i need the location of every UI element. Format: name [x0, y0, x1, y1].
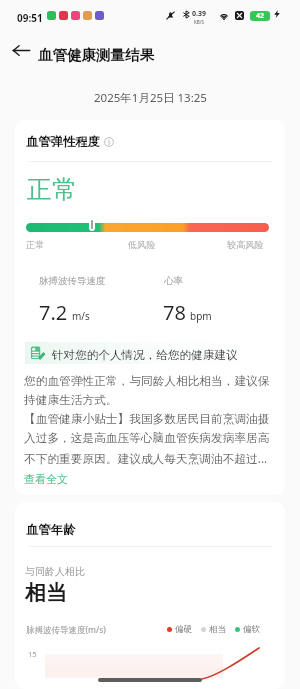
- staticText: 正常: [26, 239, 45, 251]
- staticText: 相当: [209, 624, 226, 635]
- staticText: m/s: [72, 309, 90, 323]
- staticText: 相当: [25, 580, 67, 606]
- staticText: 针对您的个人情况，给您的健康建议: [52, 348, 238, 363]
- staticText: 78: [163, 299, 186, 326]
- button[interactable]: Back: [9, 38, 33, 62]
- staticText: 与同龄人相比: [25, 565, 85, 578]
- staticText: KB/S: [194, 19, 204, 25]
- staticText: 偏软: [243, 624, 260, 635]
- staticText: 入过多，这是高血压等心脑血管疾病发病率居高: [24, 431, 270, 446]
- staticText: 2025年1月25日 13:25: [94, 90, 207, 106]
- staticText: 不下的重要原因。建议成人每天烹调油不超过...: [24, 450, 268, 466]
- staticText: 脉搏波传导速度(m/s): [26, 624, 106, 636]
- staticText: 7.2: [39, 299, 68, 326]
- staticText: 心率: [164, 275, 183, 287]
- staticText: 【血管健康小贴士】我国多数居民目前烹调油摄: [24, 412, 270, 427]
- staticText: 15: [28, 649, 37, 659]
- staticText: 血管年龄: [26, 522, 76, 537]
- staticText: 您的血管弹性正常，与同龄人相比相当，建议保: [24, 374, 270, 389]
- staticText: 09:51: [17, 11, 43, 25]
- button[interactable]: 查看全文: [24, 472, 68, 486]
- staticText: 低风险: [128, 239, 156, 251]
- staticText: 较高风险: [227, 239, 264, 251]
- staticText: 0.39: [192, 9, 206, 19]
- staticText: 脉搏波传导速度: [39, 275, 106, 287]
- staticText: 持健康生活方式。: [24, 393, 118, 408]
- staticText: 42: [256, 11, 265, 21]
- staticText: 血管弹性程度: [26, 134, 100, 149]
- staticText: bpm: [190, 309, 212, 323]
- staticText: 偏硬: [175, 624, 192, 635]
- staticText: 血管健康测量结果: [38, 46, 154, 64]
- staticText: 正常: [27, 174, 77, 205]
